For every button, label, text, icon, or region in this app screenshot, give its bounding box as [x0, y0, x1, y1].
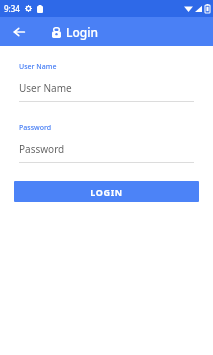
staticText: Password	[19, 142, 65, 156]
staticText: Password	[19, 123, 52, 133]
staticText: Login	[66, 24, 98, 40]
button[interactable]: LOGIN	[14, 181, 199, 202]
button[interactable]: Back	[8, 21, 30, 43]
staticText: User Name	[19, 62, 57, 72]
button[interactable]: User Name	[0, 62, 213, 102]
staticText: User Name	[19, 81, 72, 95]
button[interactable]: Password	[0, 123, 213, 163]
staticText: LOGIN	[90, 186, 123, 198]
staticText: 9:34	[4, 3, 20, 14]
